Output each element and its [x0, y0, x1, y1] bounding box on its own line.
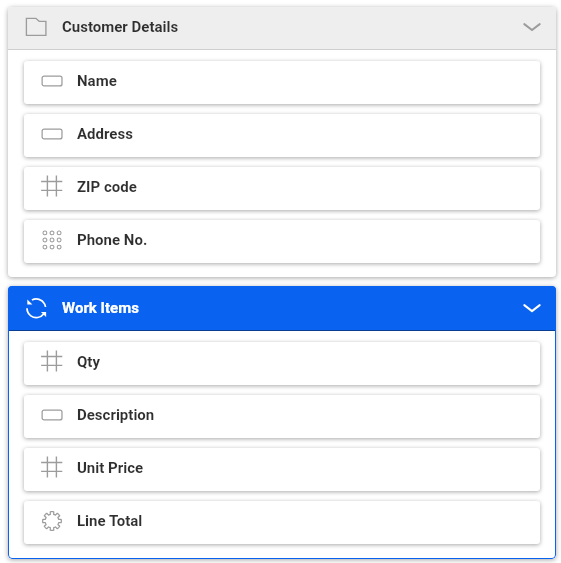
staticText: Work Items	[62, 299, 139, 317]
button[interactable]: Line Total	[24, 501, 540, 544]
staticText: Description	[77, 406, 155, 424]
button[interactable]: Phone No.	[24, 220, 540, 263]
button[interactable]: Address	[24, 114, 540, 157]
button[interactable]: Collapse Work Items	[520, 296, 544, 320]
other: Customer folder	[24, 15, 48, 39]
staticText: Line Total	[77, 512, 143, 530]
button[interactable]: ZIP code	[24, 167, 540, 210]
staticText: Unit Price	[77, 459, 144, 477]
staticText: Name	[77, 72, 117, 90]
button[interactable]: Name	[24, 61, 540, 104]
staticText: Address	[77, 125, 133, 143]
staticText: Qty	[77, 353, 100, 371]
staticText: Customer Details	[62, 18, 179, 36]
button[interactable]: Description	[24, 395, 540, 438]
button[interactable]: Work items	[8, 286, 556, 330]
staticText: Phone No.	[77, 231, 148, 249]
button[interactable]: Unit Price	[24, 448, 540, 491]
button[interactable]: Qty	[24, 342, 540, 385]
other: Work items	[24, 296, 48, 320]
button[interactable]: Customer folder	[8, 7, 556, 49]
button[interactable]: Collapse Customer Details	[520, 15, 544, 39]
staticText: ZIP code	[77, 178, 137, 196]
